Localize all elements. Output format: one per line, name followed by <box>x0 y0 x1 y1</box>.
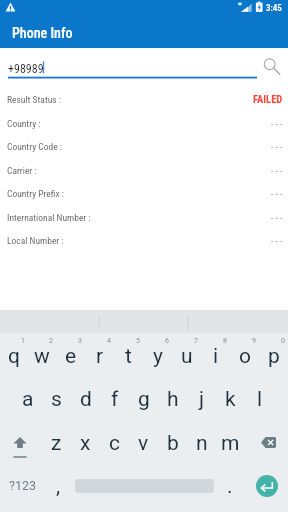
button[interactable]: Carrier : <box>0 161 288 179</box>
button[interactable]: Country Prefix : <box>0 184 288 202</box>
button[interactable]: q <box>0 333 28 377</box>
staticText: Country Prefix : <box>7 188 65 199</box>
staticText: p <box>268 344 280 369</box>
button[interactable]: l <box>245 377 274 421</box>
staticText: q <box>8 344 20 369</box>
button[interactable]: , <box>43 465 74 512</box>
staticText: 4 <box>107 337 111 345</box>
staticText: 8 <box>223 337 227 345</box>
staticText: International Number : <box>7 212 91 223</box>
staticText: w <box>34 344 50 369</box>
staticText: - - - <box>271 165 283 176</box>
staticText: . <box>227 474 233 499</box>
staticText: 3 <box>78 337 82 345</box>
button[interactable]: t <box>114 333 143 377</box>
staticText: a <box>22 387 34 412</box>
staticText: ?123 <box>9 478 36 493</box>
staticText: c <box>109 431 120 456</box>
button[interactable]: s <box>42 377 71 421</box>
staticText: - - - <box>271 212 283 223</box>
staticText: 2 <box>49 337 53 345</box>
button[interactable]: e <box>56 333 85 377</box>
button[interactable]: u <box>172 333 201 377</box>
staticText: 5 <box>136 337 140 345</box>
button[interactable]: x <box>71 421 100 465</box>
button[interactable]: y <box>143 333 172 377</box>
staticText: +98989 <box>8 62 44 76</box>
staticText: s <box>51 387 62 412</box>
button[interactable]: ?123 <box>0 465 43 512</box>
staticText: n <box>196 431 208 456</box>
button[interactable]: r <box>85 333 114 377</box>
staticText: 3:45 <box>266 3 282 14</box>
staticText: d <box>80 387 92 412</box>
staticText: 6 <box>165 337 169 345</box>
staticText: b <box>167 431 179 456</box>
staticText: Country Code : <box>7 141 62 152</box>
staticText: 9 <box>252 337 256 345</box>
staticText: h <box>167 387 179 412</box>
button[interactable]: Country : <box>0 114 288 132</box>
button[interactable]: i <box>201 333 230 377</box>
staticText: Carrier : <box>7 165 37 176</box>
button[interactable]: v <box>129 421 158 465</box>
staticText: m <box>221 431 240 456</box>
button[interactable]: Shift <box>0 421 42 465</box>
button[interactable]: . <box>214 465 245 512</box>
button[interactable]: b <box>158 421 187 465</box>
button[interactable]: c <box>100 421 129 465</box>
button[interactable]: a <box>13 377 42 421</box>
button[interactable]: o <box>230 333 259 377</box>
button[interactable]: Backspace <box>245 421 288 465</box>
staticText: 1 <box>21 337 25 345</box>
staticText: - - - <box>271 141 283 152</box>
button[interactable]: p <box>259 333 288 377</box>
staticText: f <box>111 387 119 412</box>
staticText: x <box>80 431 91 456</box>
staticText: j <box>199 387 205 412</box>
staticText: i <box>213 344 219 369</box>
button[interactable]: Local Number : <box>0 231 288 249</box>
staticText: - - - <box>271 118 283 129</box>
staticText: r <box>96 344 104 369</box>
staticText: v <box>138 431 149 456</box>
staticText: - - - <box>271 188 283 199</box>
staticText: o <box>239 344 251 369</box>
button[interactable]: Space <box>74 465 214 512</box>
button[interactable]: w <box>28 333 56 377</box>
button[interactable]: g <box>129 377 158 421</box>
staticText: Local Number : <box>7 235 64 246</box>
staticText: l <box>257 387 263 412</box>
button[interactable]: f <box>100 377 129 421</box>
staticText: - - - <box>271 235 283 246</box>
staticText: 7 <box>194 337 198 345</box>
staticText: z <box>51 431 62 456</box>
staticText: Country : <box>7 118 41 129</box>
staticText: Result Status : <box>7 94 62 105</box>
staticText: FAILED <box>253 93 283 105</box>
staticText: t <box>125 344 132 369</box>
button[interactable]: z <box>42 421 71 465</box>
button[interactable]: Country Code : <box>0 137 288 155</box>
button[interactable]: Search <box>258 54 282 78</box>
staticText: Phone Info <box>12 25 73 41</box>
button[interactable]: k <box>216 377 245 421</box>
button[interactable]: d <box>71 377 100 421</box>
button[interactable]: Result Status : <box>0 90 288 108</box>
button[interactable]: n <box>187 421 216 465</box>
staticText: 0 <box>281 337 285 345</box>
staticText: e <box>65 344 77 369</box>
button[interactable]: h <box>158 377 187 421</box>
staticText: u <box>181 344 193 369</box>
button[interactable]: m <box>216 421 245 465</box>
button[interactable]: International Number : <box>0 208 288 226</box>
staticText: , <box>56 474 61 499</box>
staticText: g <box>138 387 150 412</box>
staticText: y <box>153 344 163 369</box>
staticText: k <box>225 387 236 412</box>
button[interactable]: Enter <box>245 465 288 512</box>
button[interactable]: j <box>187 377 216 421</box>
